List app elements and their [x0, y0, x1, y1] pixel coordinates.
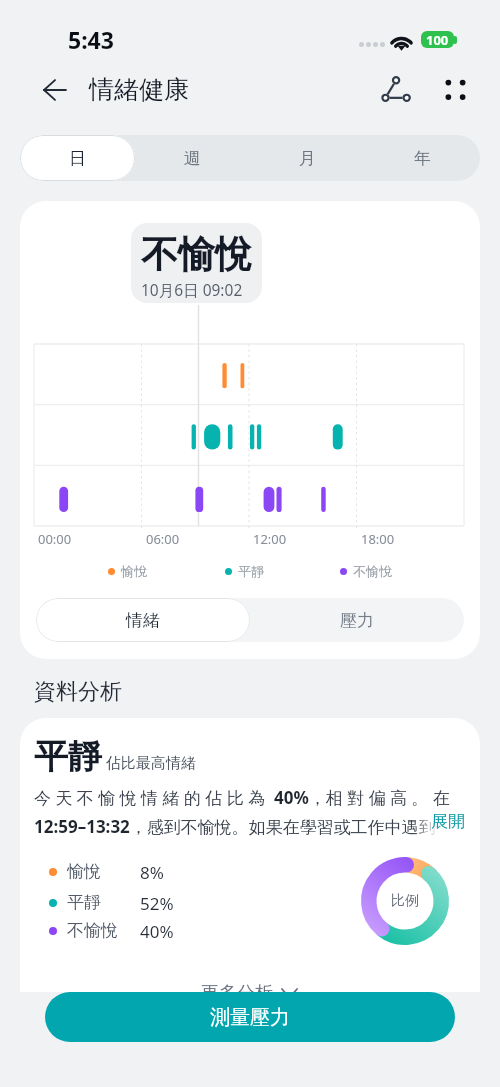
button[interactable]: 日: [20, 135, 135, 181]
staticText: 今 天 不 愉 悅 情 緒 的 佔 比 為 40%，相 對 偏 高 。 在 12…: [34, 786, 470, 838]
staticText: 10月6日 09:02: [141, 279, 243, 300]
staticText: 年: [414, 148, 431, 169]
staticText: 壓力: [340, 610, 374, 631]
button[interactable]: Back: [34, 69, 76, 111]
staticText: 不愉悅: [141, 231, 252, 278]
staticText: 測量壓力: [210, 1005, 290, 1030]
staticText: 18:00: [361, 530, 395, 548]
button[interactable]: Share: [375, 69, 415, 109]
staticText: 100: [426, 31, 449, 48]
staticText: 12:00: [253, 530, 287, 548]
staticText: 情緒健康: [89, 74, 189, 105]
staticText: 06:00: [146, 530, 180, 548]
staticText: 5:43: [68, 24, 114, 55]
staticText: 更多分析: [201, 982, 273, 992]
staticText: 52%: [140, 892, 174, 915]
staticText: 情緒: [126, 610, 160, 631]
staticText: 平靜: [238, 563, 264, 579]
staticText: 40%: [140, 920, 174, 943]
button[interactable]: 週: [135, 135, 250, 181]
staticText: 週: [184, 148, 201, 169]
button[interactable]: 測量壓力: [45, 992, 455, 1042]
staticText: 佔比最高情緒: [106, 754, 196, 773]
staticText: 愉悅: [67, 861, 101, 882]
staticText: 日: [69, 148, 86, 169]
button[interactable]: 展開: [431, 811, 465, 832]
button[interactable]: 更多分析: [201, 982, 297, 992]
staticText: 比例: [391, 892, 419, 910]
staticText: 不愉悅: [353, 563, 392, 579]
staticText: 愉悅: [121, 563, 147, 579]
staticText: 8%: [140, 861, 164, 884]
staticText: 資料分析: [34, 678, 122, 706]
staticText: 00:00: [38, 530, 72, 548]
button[interactable]: 年: [365, 135, 480, 181]
button[interactable]: More options: [435, 69, 475, 109]
button[interactable]: 月: [250, 135, 365, 181]
staticText: 月: [299, 148, 316, 169]
staticText: 平靜: [34, 735, 102, 778]
staticText: 平靜: [67, 892, 101, 913]
staticText: 不愉悅: [67, 920, 118, 941]
button[interactable]: 壓力: [250, 598, 464, 642]
button[interactable]: 情緒: [36, 598, 250, 642]
